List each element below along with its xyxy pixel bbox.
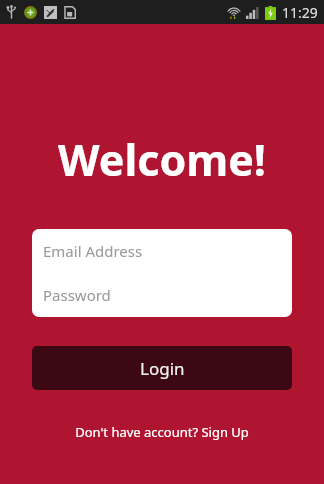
staticText: Email Address [43, 241, 143, 261]
button[interactable]: Password [32, 273, 292, 317]
staticText: Welcome! [0, 130, 324, 189]
staticText: Don't have account? Sign Up [75, 423, 249, 441]
button[interactable]: Login [32, 346, 292, 390]
button[interactable]: Don't have account? Sign Up [0, 423, 324, 441]
button[interactable]: Email Address [32, 229, 292, 273]
staticText: Login [140, 357, 185, 380]
staticText: Password [43, 285, 111, 305]
staticText: 11:29 [282, 3, 318, 22]
